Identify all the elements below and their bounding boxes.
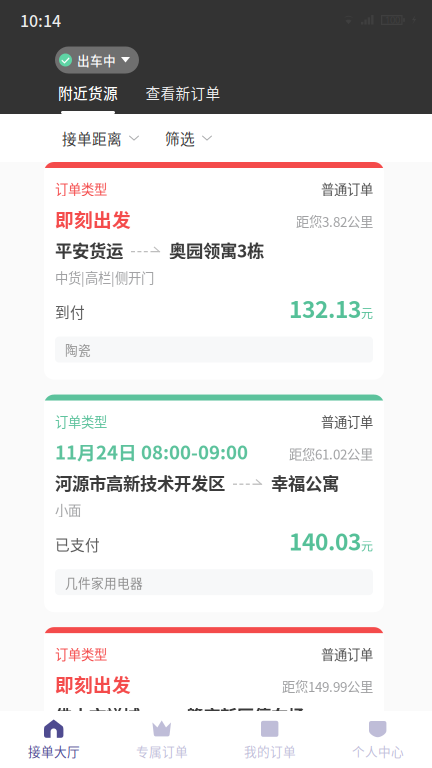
button[interactable]: 接单大厅 xyxy=(0,711,108,768)
staticText: 个人中心 xyxy=(352,742,404,760)
staticText: 出车中 xyxy=(77,51,116,69)
staticText: 河源市高新技术开发区 xyxy=(55,470,225,495)
staticText: 查看新订单 xyxy=(145,82,220,103)
staticText: 我的订单 xyxy=(244,742,296,760)
button[interactable]: 接单距离 xyxy=(62,116,139,160)
staticText: 即刻出发 xyxy=(55,205,131,232)
staticText: 几件家用电器 xyxy=(65,573,143,591)
staticText: 即刻出发 xyxy=(55,670,131,697)
staticText: 中货 xyxy=(55,733,81,752)
staticText: 距您61.02公里 xyxy=(289,444,373,463)
staticText: 元 xyxy=(361,537,373,554)
staticText: 普通订单 xyxy=(321,644,373,663)
button[interactable]: 我的订单 xyxy=(216,711,324,768)
staticText: 100 xyxy=(385,14,400,26)
button[interactable]: 专属订单 xyxy=(108,711,216,768)
staticText: 140.03 xyxy=(289,524,361,557)
staticText: 幸福公寓 xyxy=(271,470,339,495)
staticText: 陶瓷 xyxy=(65,340,91,359)
staticText: 到付 xyxy=(55,301,85,322)
staticText: 132.13 xyxy=(289,292,361,324)
button[interactable]: 订单类型 xyxy=(0,627,432,768)
staticText: 距您3.82公里 xyxy=(296,211,373,231)
staticText: 元 xyxy=(361,304,373,321)
staticText: 肇庆新区停车场 xyxy=(186,702,305,728)
staticText: 中货|高栏|侧开门 xyxy=(55,267,154,287)
staticText: 附近货源 xyxy=(58,82,118,103)
button[interactable]: 订单类型 xyxy=(0,395,432,612)
staticText: 平安货运 xyxy=(55,237,123,262)
staticText: 专属订单 xyxy=(136,742,188,760)
staticText: 普通订单 xyxy=(321,179,373,198)
staticText: 订单类型 xyxy=(55,179,107,198)
staticText: 11月24日 08:00-09:00 xyxy=(55,438,248,465)
button[interactable]: 出车中 xyxy=(55,46,139,73)
staticText: 佛山市禅城 xyxy=(55,702,140,728)
staticText: 距您149.99公里 xyxy=(282,677,373,696)
staticText: 订单类型 xyxy=(55,412,107,431)
button[interactable]: 筛选 xyxy=(165,116,212,160)
staticText: 订单类型 xyxy=(55,644,107,663)
button[interactable]: 订单类型 xyxy=(0,162,432,380)
button[interactable]: 个人中心 xyxy=(324,711,432,768)
button[interactable]: 查看新订单 xyxy=(148,80,218,114)
staticText: 10:14 xyxy=(20,8,61,32)
staticText: 接单大厅 xyxy=(28,742,80,760)
staticText: 普通订单 xyxy=(321,412,373,431)
staticText: 小面 xyxy=(55,500,81,519)
staticText: 筛选 xyxy=(165,127,195,149)
staticText: 已支付 xyxy=(55,534,100,555)
staticText: 接单距离 xyxy=(62,127,122,149)
button[interactable]: 附近货源 xyxy=(59,80,117,114)
staticText: 奥园领寓3栋 xyxy=(169,237,264,262)
